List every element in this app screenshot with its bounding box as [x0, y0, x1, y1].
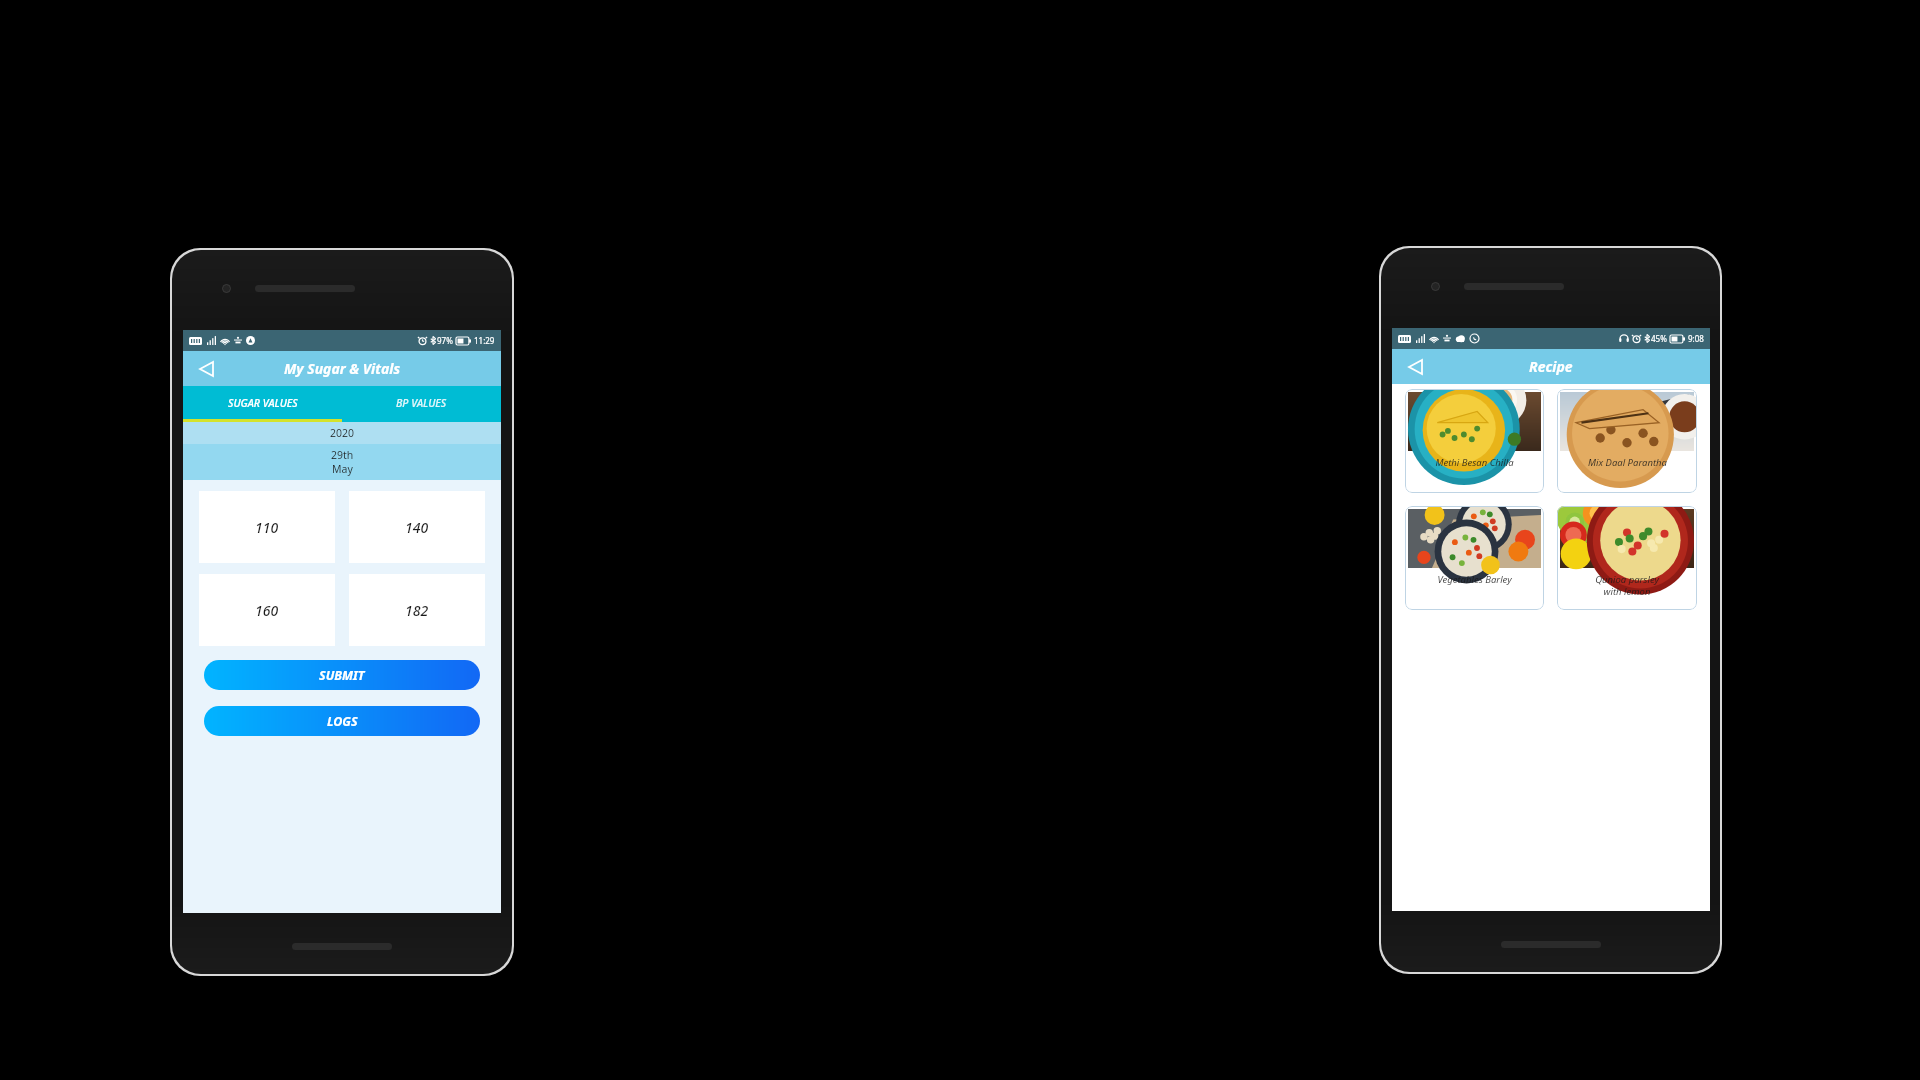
staticText: BP VALUES — [396, 396, 447, 410]
button[interactable]: Vegetables Barley — [1405, 506, 1544, 610]
staticText: SUBMIT — [319, 667, 365, 684]
button[interactable]: Mix Daal Parantha — [1557, 389, 1697, 493]
button[interactable]: Back — [1402, 354, 1428, 380]
staticText: Mix Daal Parantha — [1588, 456, 1667, 469]
staticText: Recipe — [1529, 357, 1573, 376]
staticText: Vegetables Barley — [1437, 573, 1512, 586]
staticText: My Sugar & Vitals — [284, 359, 401, 378]
staticText: 110 — [255, 518, 279, 537]
staticText: LOGS — [327, 713, 358, 730]
button[interactable]: LOGS — [204, 706, 480, 736]
staticText: 45% — [1651, 333, 1667, 344]
button[interactable]: 140 — [349, 491, 485, 563]
button[interactable]: SUGAR VALUES — [183, 386, 342, 419]
button[interactable]: 29th — [183, 444, 501, 480]
staticText: Methi Besan Chilla — [1435, 456, 1514, 469]
button[interactable]: Methi Besan Chilla — [1405, 389, 1544, 493]
staticText: 182 — [405, 601, 429, 620]
staticText: Qunioa parsley with lemon — [1595, 573, 1659, 597]
staticText: SUGAR VALUES — [228, 396, 298, 410]
button[interactable]: 160 — [199, 574, 335, 646]
staticText: 11:29 — [474, 335, 495, 346]
button[interactable]: 182 — [349, 574, 485, 646]
staticText: 9:08 — [1688, 333, 1704, 344]
staticText: 29th — [331, 448, 354, 462]
staticText: 97% — [437, 335, 453, 346]
button[interactable]: Qunioa parsley with lemon — [1557, 506, 1697, 610]
staticText: 140 — [405, 518, 429, 537]
staticText: 2020 — [330, 426, 355, 440]
button[interactable]: 110 — [199, 491, 335, 563]
button[interactable]: Back — [193, 356, 219, 382]
staticText: 160 — [255, 601, 279, 620]
button[interactable]: BP VALUES — [342, 386, 501, 419]
button[interactable]: SUBMIT — [204, 660, 480, 690]
staticText: May — [332, 462, 353, 476]
